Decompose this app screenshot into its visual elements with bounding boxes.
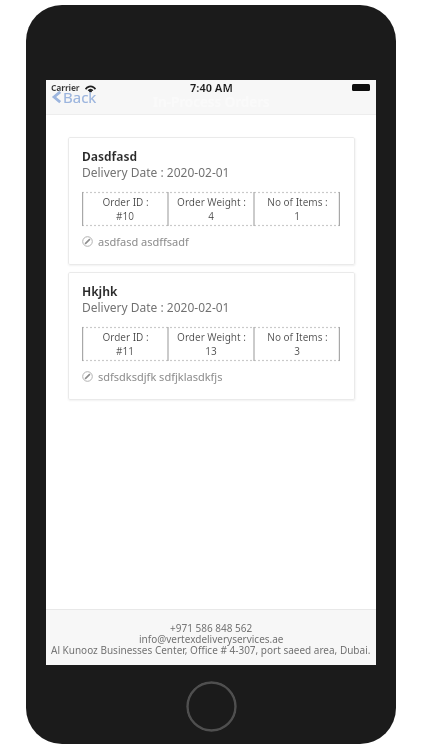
staticText: Order Weight : <box>177 330 246 344</box>
staticText: 4 <box>208 209 214 223</box>
button[interactable]: Hkjhk <box>68 272 355 400</box>
button[interactable]: Home <box>186 681 237 732</box>
staticText: Order ID : <box>102 330 149 344</box>
staticText: Hkjhk <box>82 283 118 299</box>
staticText: 13 <box>205 344 217 358</box>
staticText: No of Items : <box>267 195 328 209</box>
staticText: sdfsdksdjfk sdfjklasdkfjs <box>98 369 223 384</box>
staticText: #11 <box>116 344 134 358</box>
staticText: Back <box>63 87 97 107</box>
staticText: 3 <box>294 344 300 358</box>
staticText: Al Kunooz Businesses Center, Office # 4-… <box>51 643 371 657</box>
button[interactable]: Back <box>49 86 100 108</box>
staticText: Delivery Date : 2020-02-01 <box>82 164 230 180</box>
staticText: Order ID : <box>102 195 149 209</box>
staticText: 1 <box>294 209 300 223</box>
staticText: No of Items : <box>267 330 328 344</box>
staticText: +971 586 848 562 <box>170 621 253 635</box>
staticText: info@vertexdeliveryservices.ae <box>139 632 284 646</box>
staticText: Delivery Date : 2020-02-01 <box>82 299 230 315</box>
staticText: Order Weight : <box>177 195 246 209</box>
staticText: 7:40 AM <box>190 80 233 95</box>
staticText: #10 <box>116 209 134 223</box>
staticText: Carrier <box>51 82 80 94</box>
button[interactable]: Dasdfasd <box>68 137 355 265</box>
staticText: Dasdfasd <box>82 148 138 164</box>
staticText: asdfasd asdffsadf <box>98 234 189 249</box>
